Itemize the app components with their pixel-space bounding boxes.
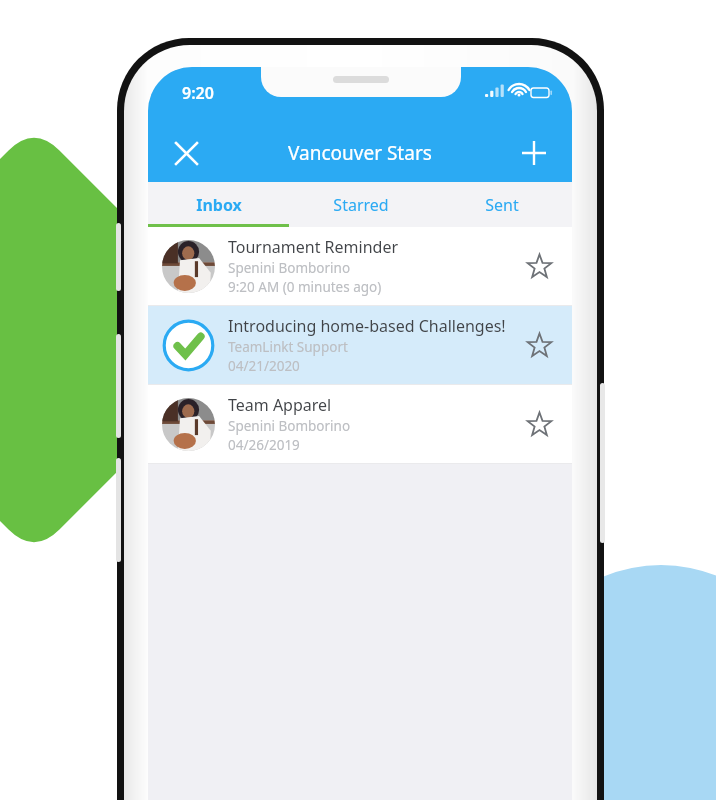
button[interactable]: Compose new message: [510, 129, 558, 177]
staticText: Spenini Bomborino: [228, 259, 351, 277]
staticText: Vancouver Stars: [288, 140, 432, 166]
staticText: 04/21/2020: [228, 357, 300, 375]
button[interactable]: Star message: [516, 322, 562, 368]
button[interactable]: Inbox: [148, 182, 290, 227]
staticText: Sent: [485, 194, 519, 216]
button[interactable]: Star message: [516, 243, 562, 289]
button[interactable]: Sent: [431, 182, 572, 227]
staticText: Spenini Bomborino: [228, 417, 351, 435]
staticText: TeamLinkt Support: [228, 338, 348, 356]
button[interactable]: Tournament Reminder: [148, 227, 572, 305]
button[interactable]: Close: [162, 129, 210, 177]
staticText: Team Apparel: [228, 394, 332, 416]
staticText: Starred: [333, 194, 389, 216]
staticText: 9:20 AM (0 minutes ago): [228, 278, 382, 296]
staticText: Inbox: [196, 194, 242, 216]
button[interactable]: Team Apparel: [148, 385, 572, 463]
button[interactable]: Star message: [516, 401, 562, 447]
button[interactable]: Introducing home-based Challenges!: [148, 306, 572, 384]
staticText: Tournament Reminder: [228, 236, 399, 258]
staticText: Introducing home-based Challenges!: [228, 315, 506, 337]
button[interactable]: Starred: [290, 182, 431, 227]
staticText: 04/26/2019: [228, 436, 300, 454]
staticText: 9:20: [182, 82, 214, 104]
